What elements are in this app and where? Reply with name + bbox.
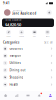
staticText: Categories xyxy=(3,41,19,44)
button[interactable]: Insights xyxy=(11,91,22,100)
staticText: Utilities xyxy=(9,61,20,65)
button[interactable]: Alerts xyxy=(34,91,45,100)
button[interactable]: Transport xyxy=(0,52,56,59)
button[interactable]: Shopping xyxy=(0,74,56,81)
button[interactable]: See all xyxy=(44,41,53,44)
button[interactable]: Send xyxy=(2,30,15,37)
staticText: Top up xyxy=(19,35,24,37)
staticText: 9:41 xyxy=(3,1,10,5)
staticText: Total balance xyxy=(5,18,22,22)
staticText: More xyxy=(45,35,49,37)
button[interactable]: Cards xyxy=(22,91,34,100)
staticText: Send xyxy=(6,35,10,37)
staticText: $4,820.50 xyxy=(5,22,21,27)
button[interactable]: Top up xyxy=(15,30,28,37)
button[interactable]: Notifications xyxy=(46,10,52,15)
button[interactable]: More xyxy=(41,30,54,37)
staticText: Welcome back xyxy=(12,10,22,12)
button[interactable]: Profile xyxy=(45,91,56,100)
staticText: Shopping xyxy=(9,76,23,79)
button[interactable]: Home xyxy=(0,91,11,100)
button[interactable]: Dining out xyxy=(0,67,56,74)
button[interactable]: Profile xyxy=(4,9,10,16)
staticText: Jane Appleseed xyxy=(12,12,36,15)
button[interactable]: Health xyxy=(0,81,56,88)
button[interactable]: Utilities xyxy=(0,59,56,67)
staticText: See all xyxy=(44,41,53,44)
staticText: Health xyxy=(9,83,18,86)
staticText: Groceries xyxy=(9,47,22,50)
button[interactable]: Pay xyxy=(28,30,41,37)
staticText: Pay xyxy=(33,35,36,37)
button[interactable]: Groceries xyxy=(0,45,56,52)
staticText: Transport xyxy=(9,54,21,57)
button[interactable]: Total balance xyxy=(0,18,56,27)
staticText: Dining out xyxy=(9,68,25,72)
